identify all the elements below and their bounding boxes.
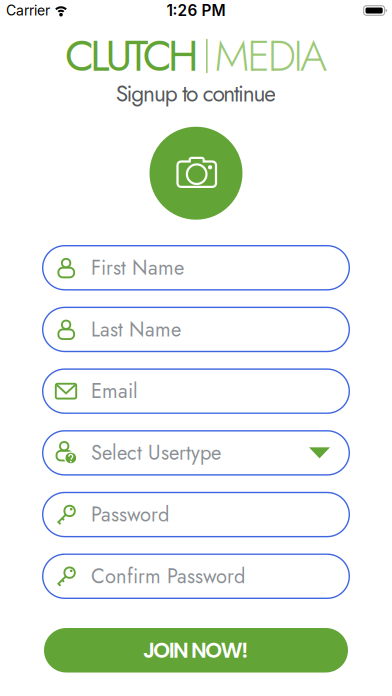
staticText: Select Usertype [91, 438, 221, 467]
staticText: 1:26 PM [166, 1, 225, 20]
staticText: Confirm Password [91, 562, 245, 591]
button[interactable]: Last Name [42, 307, 350, 352]
button[interactable]: Select Usertype [42, 430, 350, 476]
staticText: CLUTCH [65, 25, 199, 87]
button[interactable]: Email [42, 368, 350, 414]
staticText: Carrier [6, 2, 50, 19]
staticText: Password [91, 500, 169, 529]
button[interactable]: Add profile photo [149, 127, 242, 220]
button[interactable]: First Name [42, 245, 350, 290]
staticText: Last Name [91, 315, 181, 344]
button[interactable]: JOIN NOW! [44, 628, 348, 672]
staticText: Email [91, 377, 138, 406]
staticText: MEDIA [215, 25, 327, 87]
staticText: JOIN NOW! [143, 635, 249, 665]
button[interactable]: Password [42, 492, 350, 537]
staticText: Signup to continue [116, 77, 276, 110]
staticText: First Name [91, 253, 184, 282]
button[interactable]: Confirm Password [42, 553, 350, 599]
